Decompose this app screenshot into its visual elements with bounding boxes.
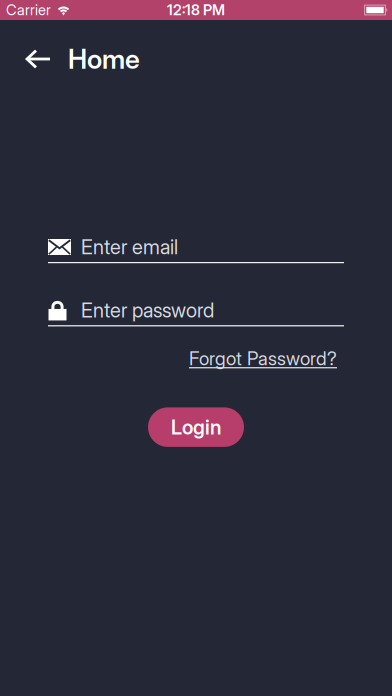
staticText: Enter email bbox=[81, 235, 178, 259]
staticText: Enter password bbox=[81, 298, 214, 322]
staticText: Login bbox=[171, 415, 221, 439]
button[interactable]: Back bbox=[25, 48, 51, 70]
staticText: Forgot Password? bbox=[189, 347, 337, 369]
button[interactable]: Forgot Password? bbox=[189, 347, 337, 369]
staticText: Carrier bbox=[6, 1, 51, 19]
button[interactable]: Enter email bbox=[0, 235, 392, 263]
staticText: Home bbox=[68, 43, 140, 75]
button[interactable]: Enter password bbox=[0, 298, 392, 326]
button[interactable]: Login bbox=[148, 407, 244, 447]
staticText: 12:18 PM bbox=[167, 1, 225, 19]
